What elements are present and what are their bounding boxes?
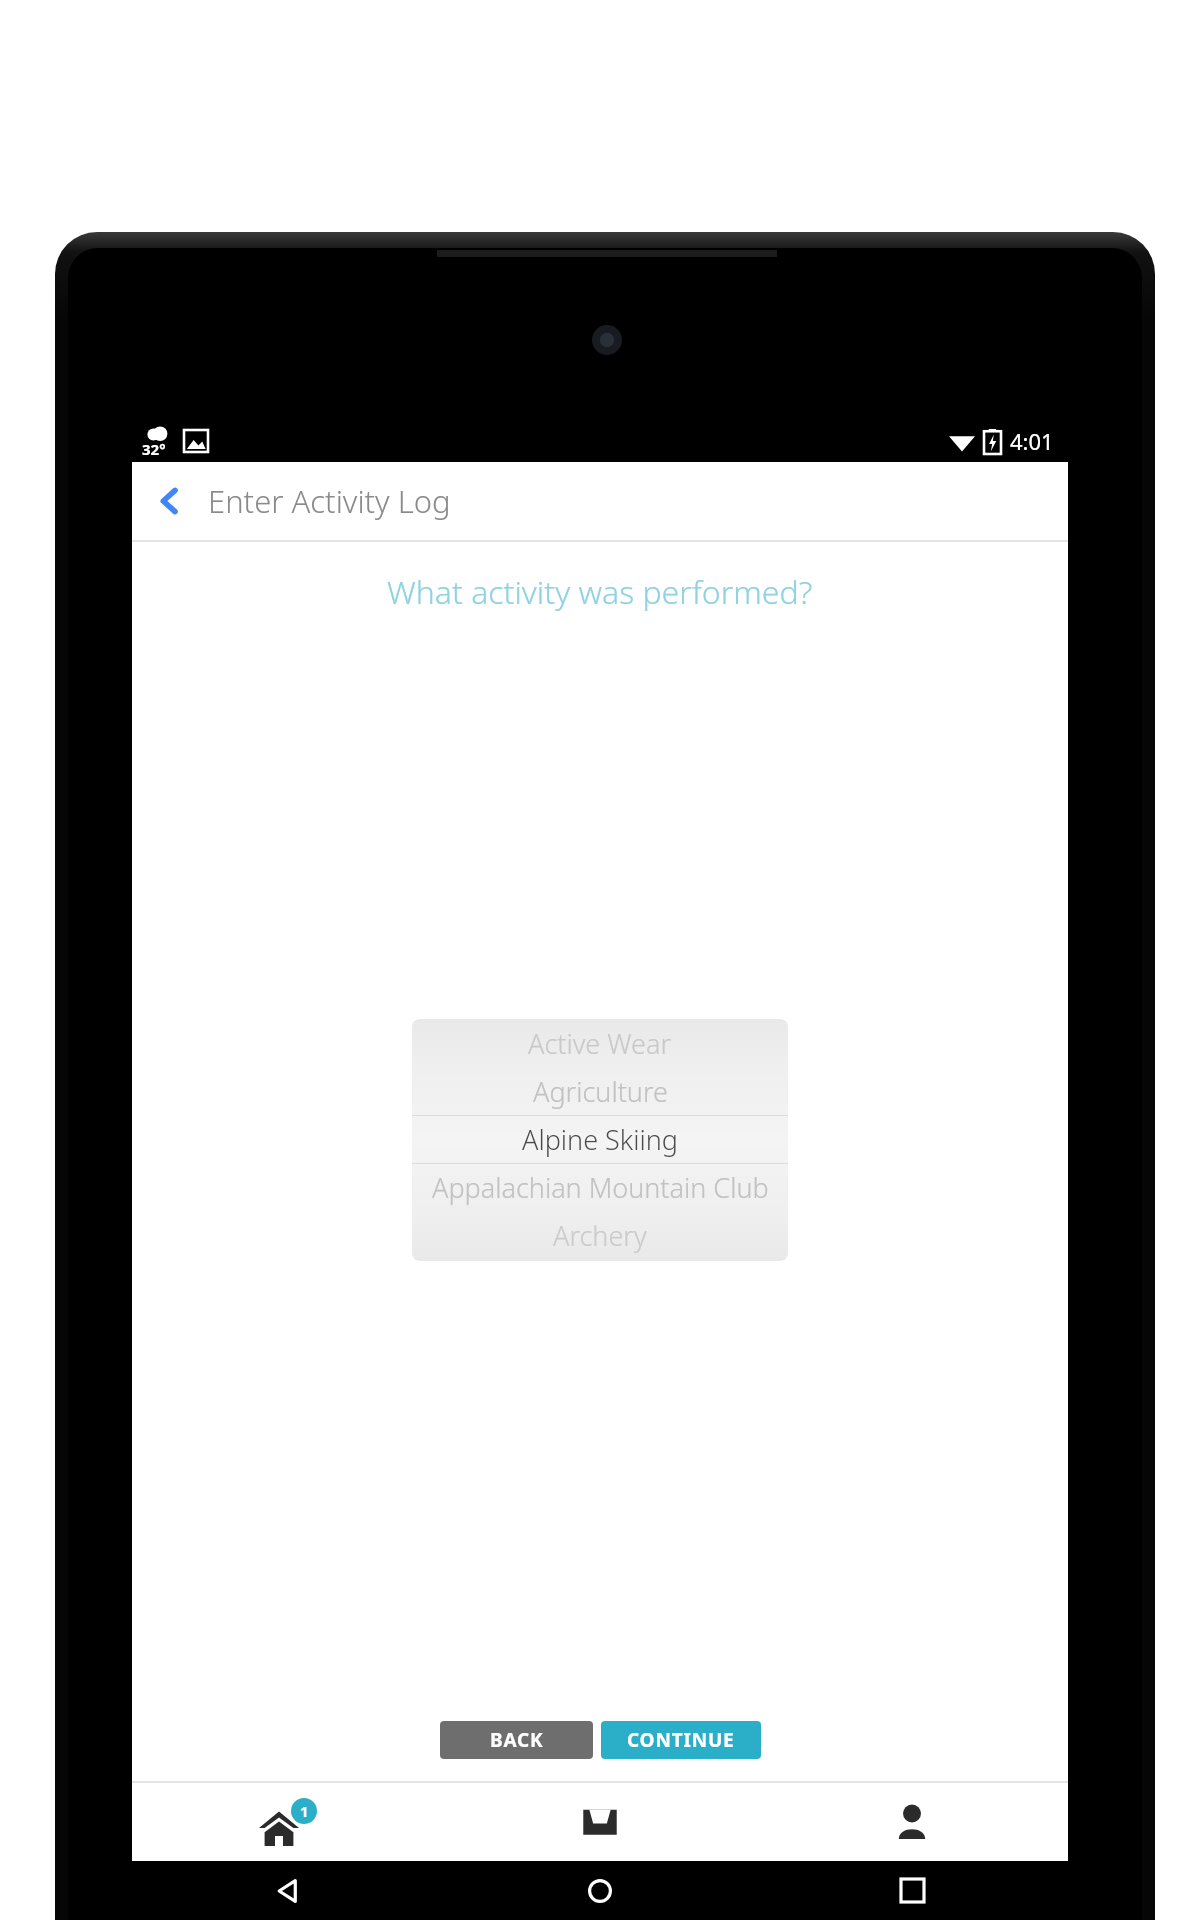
button[interactable]: Profile — [756, 1783, 1068, 1861]
staticText: 4:01 — [1010, 426, 1054, 456]
staticText: Alpine Skiing — [522, 1121, 678, 1158]
staticText: Active Wear — [528, 1025, 672, 1062]
button[interactable]: Home — [444, 1861, 756, 1920]
staticText: 32° — [142, 439, 166, 459]
button[interactable]: Back — [132, 1861, 444, 1920]
button[interactable]: CONTINUE — [601, 1721, 761, 1759]
button[interactable]: Home — [132, 1783, 444, 1861]
button[interactable]: Back — [132, 462, 208, 540]
staticText: 1 — [300, 1801, 309, 1821]
button[interactable]: BACK — [440, 1721, 593, 1759]
staticText: BACK — [490, 1727, 544, 1753]
button[interactable]: Recent apps — [756, 1861, 1068, 1920]
staticText: Enter Activity Log — [208, 480, 451, 522]
staticText: Appalachian Mountain Club — [432, 1169, 769, 1206]
staticText: CONTINUE — [627, 1727, 735, 1753]
button[interactable]: Inbox — [444, 1783, 756, 1861]
staticText: Agriculture — [533, 1073, 668, 1110]
staticText: Archery — [553, 1217, 647, 1254]
button[interactable]: Active Wear — [412, 1019, 788, 1261]
staticText: What activity was performed? — [387, 570, 813, 614]
